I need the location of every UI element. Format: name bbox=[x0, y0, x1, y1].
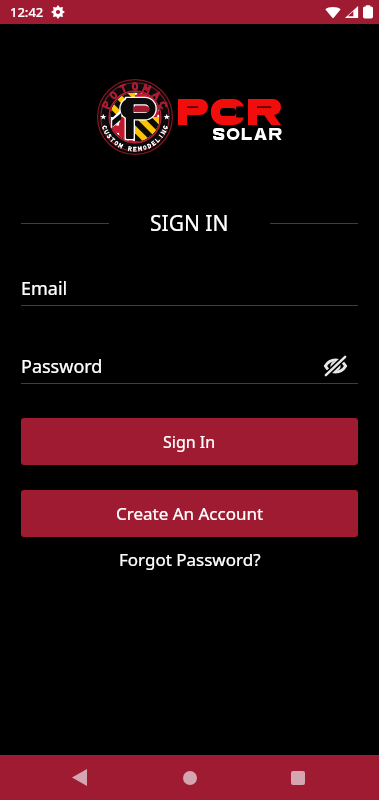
staticText: Email bbox=[21, 276, 68, 300]
button[interactable]: Recent apps bbox=[274, 755, 322, 800]
staticText: SIGN IN bbox=[150, 209, 229, 237]
button[interactable]: Home bbox=[166, 755, 214, 800]
button[interactable]: Show password bbox=[324, 354, 358, 378]
staticText: Password bbox=[21, 354, 103, 378]
staticText: Create An Account bbox=[116, 502, 264, 525]
button[interactable]: Sign In bbox=[21, 418, 358, 465]
button[interactable]: Back bbox=[55, 755, 103, 800]
staticText: Sign In bbox=[163, 431, 216, 453]
staticText: 12:42 bbox=[10, 3, 44, 21]
button[interactable]: Forgot Password? bbox=[109, 544, 271, 575]
button[interactable]: Create An Account bbox=[21, 490, 358, 537]
